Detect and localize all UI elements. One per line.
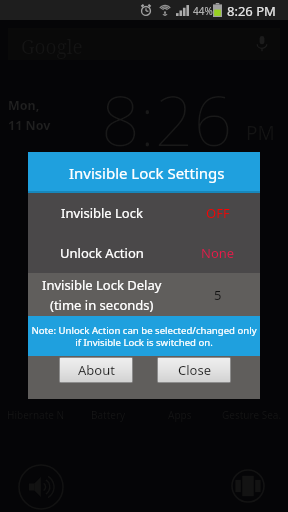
button[interactable]: Invisible Lock Settings xyxy=(28,152,260,193)
button[interactable]: Unlock Action xyxy=(28,233,260,273)
button[interactable]: Camera xyxy=(231,469,265,503)
staticText: 8:26 xyxy=(101,73,233,166)
staticText: None xyxy=(201,244,235,262)
button[interactable]: Hibernate N xyxy=(0,408,72,422)
button[interactable]: About xyxy=(60,358,132,382)
staticText: Google xyxy=(21,34,83,60)
button[interactable]: Invisible Lock Delay xyxy=(28,273,260,316)
staticText: Mon, xyxy=(8,97,40,114)
staticText: Note: Unlock Action can be selected/chan… xyxy=(31,324,257,349)
staticText: Unlock Action xyxy=(60,244,144,262)
staticText: Invisible Lock Delay xyxy=(42,276,162,294)
staticText: Invisible Lock xyxy=(61,204,143,222)
button[interactable]: Gesture Sea. xyxy=(216,408,288,422)
button[interactable]: Close xyxy=(158,358,230,382)
staticText: Battery xyxy=(91,408,126,422)
other: Voice search xyxy=(257,36,267,52)
staticText: 44% xyxy=(193,4,213,18)
staticText: Apps xyxy=(168,408,192,422)
staticText: (time in seconds) xyxy=(50,296,154,314)
staticText: 5 xyxy=(214,286,222,304)
staticText: Hibernate N xyxy=(7,408,65,422)
staticText: About xyxy=(78,361,115,379)
button[interactable]: Invisible Lock xyxy=(28,193,260,233)
staticText: PM xyxy=(246,120,275,146)
staticText: 8:26 PM xyxy=(227,2,276,20)
button[interactable]: Sound xyxy=(18,464,64,510)
staticText: Close xyxy=(178,361,211,379)
staticText: Invisible Lock Settings xyxy=(69,163,225,183)
staticText: OFF xyxy=(206,204,230,222)
staticText: 11 Nov xyxy=(8,117,51,134)
staticText: Gesture Sea. xyxy=(222,408,282,422)
